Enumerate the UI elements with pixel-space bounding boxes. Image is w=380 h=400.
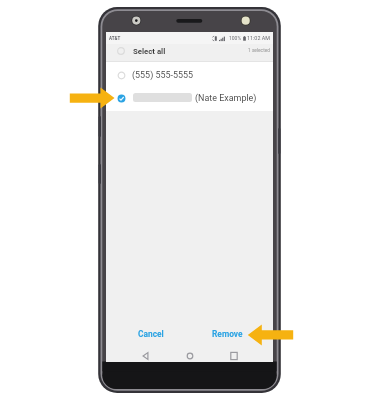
button[interactable]: Remove (206, 326, 248, 342)
staticText: AT&T (109, 36, 121, 41)
staticText: 100% (229, 35, 242, 41)
button[interactable]: Cancel (130, 326, 172, 342)
staticText: (555) 555-5555 (132, 70, 194, 80)
staticText: Select all (133, 47, 166, 56)
button[interactable]: Recent apps (226, 348, 242, 364)
button[interactable]: Select all (106, 44, 273, 62)
button[interactable]: (Nate Example) (106, 86, 273, 109)
staticText: (Nate Example) (195, 93, 257, 103)
button[interactable]: Back (138, 348, 154, 364)
staticText: Remove (212, 329, 243, 339)
button[interactable]: (555) 555-5555 (106, 63, 273, 86)
button[interactable]: Home (182, 348, 198, 364)
staticText: Cancel (138, 329, 164, 339)
staticText: 11:02 AM (247, 35, 270, 41)
staticText: 1 selected (248, 48, 270, 54)
